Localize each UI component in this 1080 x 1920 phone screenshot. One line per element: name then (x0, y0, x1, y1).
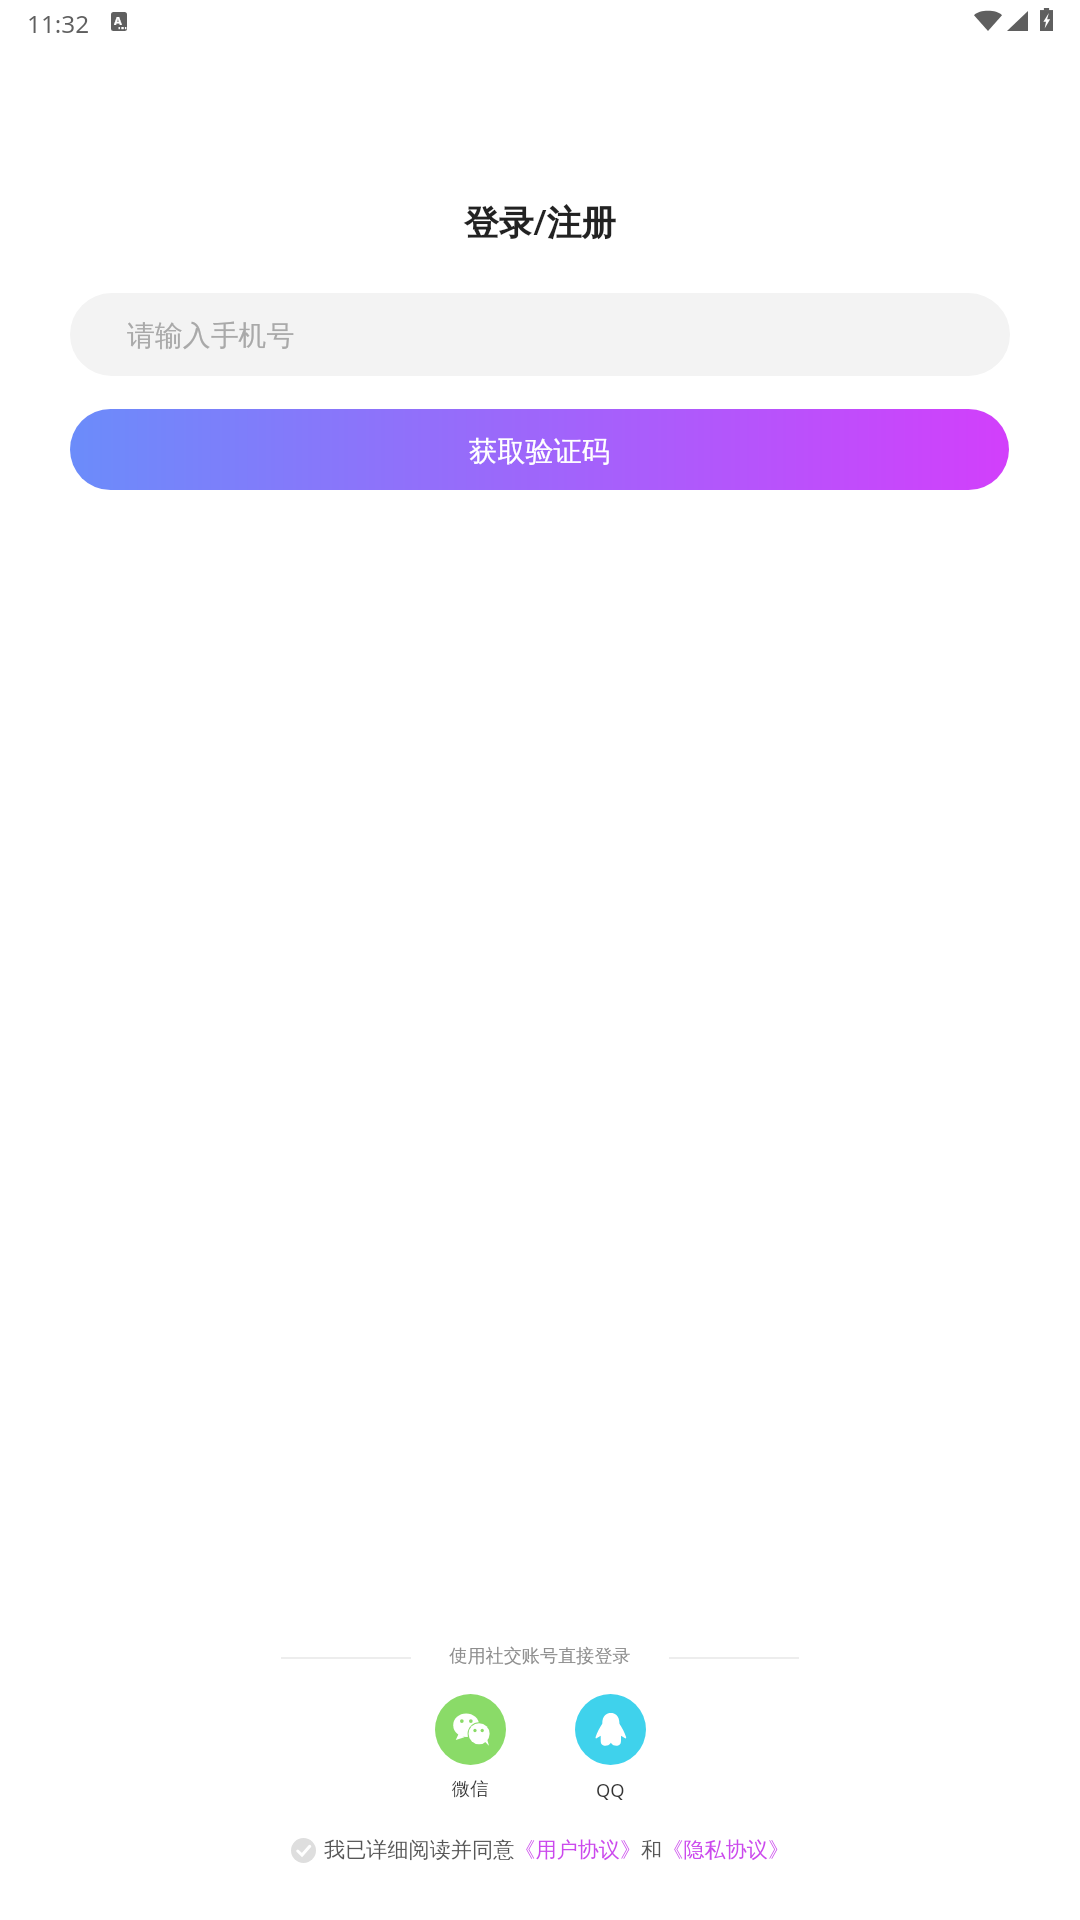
staticText: 我已详细阅读并同意《用户协议》和《隐私协议》 (324, 1837, 790, 1864)
button[interactable]: QQ login (575, 1694, 646, 1802)
staticText: QQ (596, 1777, 625, 1802)
other: QQ login (575, 1694, 646, 1765)
staticText: A (114, 13, 122, 29)
staticText: 微信 (452, 1777, 489, 1800)
other: WeChat login (435, 1694, 506, 1765)
staticText: 登录/注册 (464, 198, 616, 245)
staticText: 使用社交账号直接登录 (0, 1645, 1080, 1668)
button[interactable]: 请输入手机号 (70, 293, 1010, 376)
button[interactable]: 我已详细阅读并同意《用户协议》和《隐私协议》 (291, 1833, 790, 1868)
other: Input method (111, 12, 127, 31)
button[interactable]: WeChat login (435, 1694, 506, 1800)
staticText: 请输入手机号 (127, 318, 295, 353)
button[interactable]: 获取验证码 (70, 409, 1009, 490)
staticText: 获取验证码 (469, 434, 610, 470)
staticText: 11:32 (27, 7, 90, 40)
